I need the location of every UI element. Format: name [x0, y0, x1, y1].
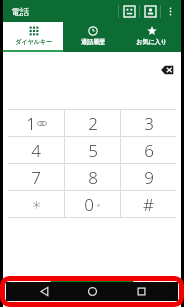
staticText: ダイヤルキー	[15, 38, 52, 46]
button[interactable]: 9	[121, 164, 176, 190]
staticText: 4	[31, 139, 41, 162]
staticText: 9	[144, 166, 154, 189]
button[interactable]: More options	[161, 2, 179, 20]
button[interactable]: Call	[49, 276, 135, 299]
button[interactable]: Home	[81, 282, 103, 301]
button[interactable]: 1	[8, 110, 64, 136]
staticText: 6	[144, 139, 154, 162]
staticText: 1	[26, 112, 36, 135]
button[interactable]: 6	[121, 137, 176, 163]
button[interactable]: 7	[8, 164, 64, 190]
button[interactable]: Backspace	[157, 60, 177, 80]
button[interactable]: お気に入り	[122, 22, 181, 52]
button[interactable]: ダイヤルキー	[3, 22, 63, 52]
button[interactable]: 2	[65, 110, 120, 136]
staticText: 0	[84, 193, 94, 216]
button[interactable]: ∗	[8, 191, 64, 217]
button[interactable]: 8	[65, 164, 120, 190]
staticText: 2	[88, 112, 98, 135]
button[interactable]: Video call	[119, 1, 139, 21]
staticText: 3	[144, 112, 154, 135]
staticText: #	[143, 193, 154, 216]
button[interactable]: 3	[121, 110, 176, 136]
staticText: 電話	[11, 6, 29, 17]
staticText: ∗	[31, 194, 42, 214]
button[interactable]: 5	[65, 137, 120, 163]
button[interactable]: #	[121, 191, 176, 217]
staticText: +	[96, 199, 101, 210]
staticText: 通話履歴	[81, 38, 105, 46]
staticText: お気に入り	[136, 38, 167, 46]
staticText: 7	[31, 166, 41, 189]
button[interactable]: Recents	[130, 282, 152, 301]
button[interactable]: 0	[65, 191, 120, 217]
button[interactable]: 4	[8, 137, 64, 163]
button[interactable]: Contacts	[140, 1, 160, 21]
button[interactable]: Back	[33, 282, 55, 301]
staticText: 5	[88, 139, 98, 162]
staticText: 8	[88, 166, 98, 189]
button[interactable]: 通話履歴	[63, 22, 122, 52]
